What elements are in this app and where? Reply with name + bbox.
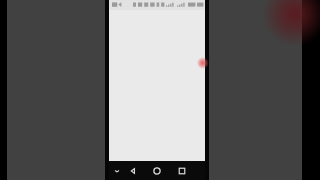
button[interactable]: Recent apps [176, 165, 188, 177]
button[interactable]: Home [151, 165, 163, 177]
button[interactable]: Hide keyboard [112, 166, 122, 176]
button[interactable]: Back [127, 165, 139, 177]
other: Touch indicator [198, 57, 210, 69]
